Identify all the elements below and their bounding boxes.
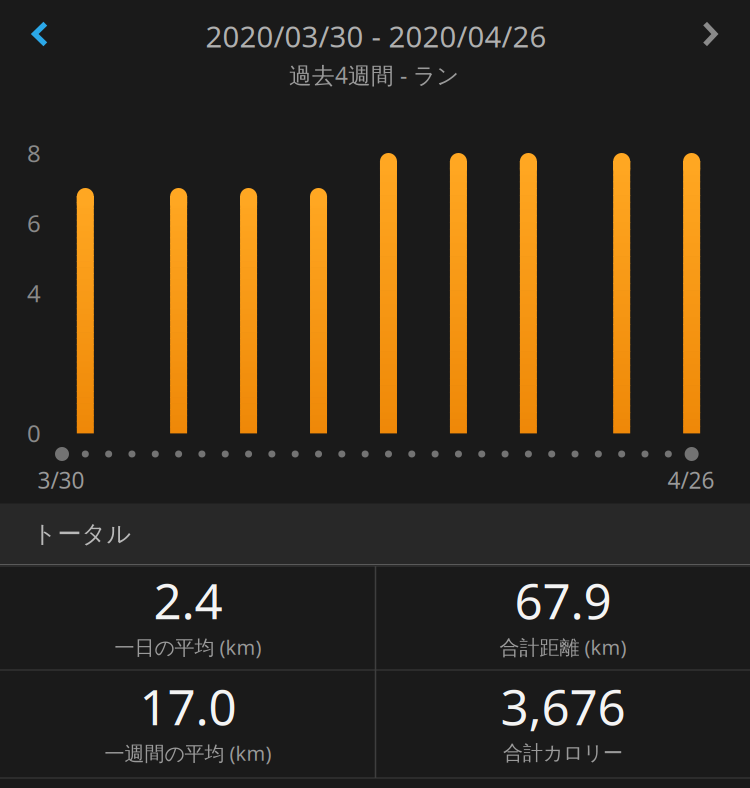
staticText: 3/30 <box>37 465 84 495</box>
staticText: 67.9 <box>514 567 611 633</box>
staticText: 4/26 <box>667 465 714 495</box>
button[interactable]: Next period <box>673 0 747 68</box>
staticText: 過去4週間 - ラン <box>289 60 459 90</box>
staticText: 17.0 <box>139 673 236 739</box>
staticText: 一週間の平均 (km) <box>104 740 271 766</box>
staticText: 8 <box>27 137 41 169</box>
staticText: トータル <box>32 519 131 549</box>
staticText: 合計カロリー <box>503 741 623 765</box>
staticText: 一日の平均 (km) <box>114 634 261 660</box>
staticText: 2020/03/30 - 2020/04/26 <box>205 16 546 55</box>
staticText: 合計距離 (km) <box>499 634 626 660</box>
staticText: 2.4 <box>153 567 222 633</box>
staticText: 6 <box>27 207 41 239</box>
staticText: 3,676 <box>500 673 625 739</box>
staticText: 4 <box>27 277 41 309</box>
button[interactable]: Previous period <box>3 0 77 68</box>
staticText: 0 <box>27 417 41 449</box>
